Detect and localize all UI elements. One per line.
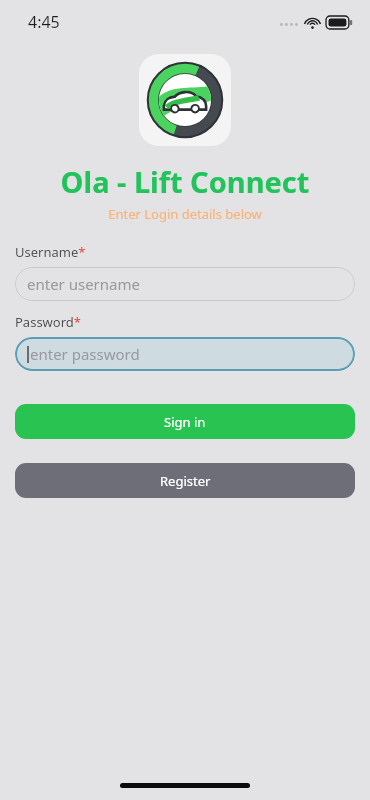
staticText: Ola - Lift Connect (0, 162, 370, 201)
staticText: 4:45 (28, 11, 60, 33)
staticText: enter username (27, 274, 140, 294)
staticText: Enter Login details below (0, 205, 370, 223)
button[interactable]: Register (15, 463, 355, 498)
staticText: Password* (15, 313, 370, 331)
staticText: Register (160, 472, 211, 490)
button[interactable]: enter username (15, 267, 355, 301)
staticText: Username* (15, 243, 370, 261)
staticText: Sign in (164, 413, 206, 431)
button[interactable]: Sign in (15, 404, 355, 439)
button[interactable]: enter password (15, 337, 355, 371)
staticText: enter password (30, 344, 140, 364)
